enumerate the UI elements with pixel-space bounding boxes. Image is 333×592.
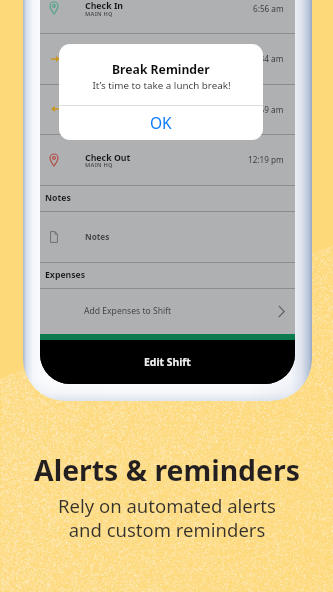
button[interactable]: OK xyxy=(59,105,263,140)
button[interactable]: Check Out xyxy=(40,134,295,185)
staticText: Notes xyxy=(45,192,71,204)
staticText: MAIN HQ xyxy=(85,10,113,18)
button[interactable]: Break End xyxy=(40,84,295,134)
staticText: 10:59 am xyxy=(248,104,284,115)
staticText: 6:56 am xyxy=(253,3,284,14)
staticText: Expenses xyxy=(45,269,86,281)
button[interactable]: Notes xyxy=(40,211,295,262)
button[interactable]: Add Expenses to Shift xyxy=(40,288,295,334)
staticText: Check In xyxy=(85,0,124,12)
staticText: 10:34 am xyxy=(248,53,284,64)
button[interactable]: Edit Shift xyxy=(40,340,295,384)
button[interactable]: Check In xyxy=(40,0,295,33)
staticText: Alerts & reminders xyxy=(34,451,300,490)
staticText: 12:19 pm xyxy=(248,154,284,165)
staticText: Check Out xyxy=(85,152,131,164)
staticText: OK xyxy=(150,112,172,133)
staticText: Break Reminder xyxy=(112,61,210,78)
staticText: Edit Shift xyxy=(144,355,191,369)
staticText: Break End xyxy=(85,105,130,117)
button[interactable]: Break Start xyxy=(40,33,295,84)
staticText: Add Expenses to Shift xyxy=(84,305,172,317)
staticText: It’s time to take a lunch break! xyxy=(92,79,231,92)
staticText: Notes xyxy=(85,231,110,242)
staticText: Rely on automated alerts and custom remi… xyxy=(58,493,276,542)
staticText: Break Start xyxy=(85,54,135,66)
staticText: MAIN HQ xyxy=(85,161,113,169)
